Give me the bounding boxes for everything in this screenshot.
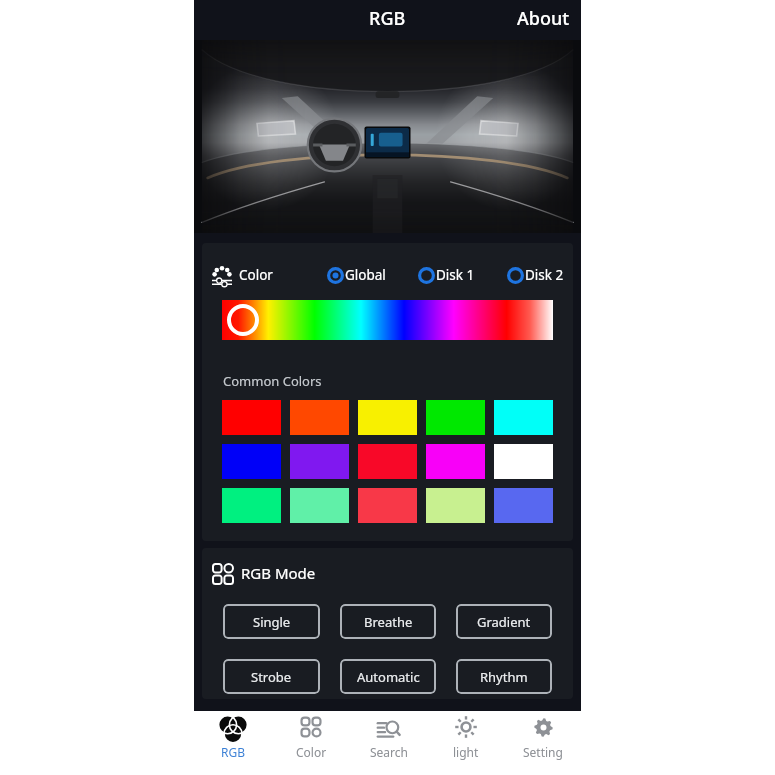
staticText: Color <box>296 744 327 760</box>
button[interactable]: Rhythm <box>456 659 552 694</box>
button[interactable]: Automatic <box>340 659 436 694</box>
staticText: Setting <box>523 744 563 760</box>
button[interactable]: Global <box>327 266 386 284</box>
staticText: Automatic <box>357 668 420 686</box>
staticText: Global <box>345 266 386 284</box>
button[interactable]: Disk 2 <box>507 266 564 284</box>
button[interactable]: Disk 1 <box>418 266 475 284</box>
staticText: RGB <box>369 6 406 31</box>
button[interactable]: Setting <box>504 711 581 775</box>
staticText: Disk 1 <box>436 266 475 284</box>
staticText: Single <box>253 613 291 631</box>
staticText: Disk 2 <box>525 266 564 284</box>
staticText: Search <box>370 744 408 760</box>
staticText: Strobe <box>251 668 292 686</box>
button[interactable]: Gradient <box>456 604 552 639</box>
staticText: About <box>517 6 570 30</box>
staticText: Breathe <box>364 613 413 631</box>
button[interactable]: About <box>501 0 581 40</box>
button[interactable]: Strobe <box>223 659 320 694</box>
button[interactable]: Search <box>350 711 427 775</box>
button[interactable]: RGB <box>194 711 272 775</box>
button[interactable]: Single <box>223 604 320 639</box>
staticText: RGB <box>221 744 246 760</box>
staticText: Common Colors <box>223 372 322 390</box>
staticText: RGB Mode <box>241 563 316 583</box>
staticText: Color <box>239 266 273 284</box>
button[interactable]: Color <box>272 711 350 775</box>
button[interactable]: Breathe <box>340 604 436 639</box>
button[interactable]: light <box>427 711 504 775</box>
staticText: Gradient <box>477 613 531 631</box>
staticText: light <box>453 744 479 760</box>
staticText: Rhythm <box>480 668 528 686</box>
